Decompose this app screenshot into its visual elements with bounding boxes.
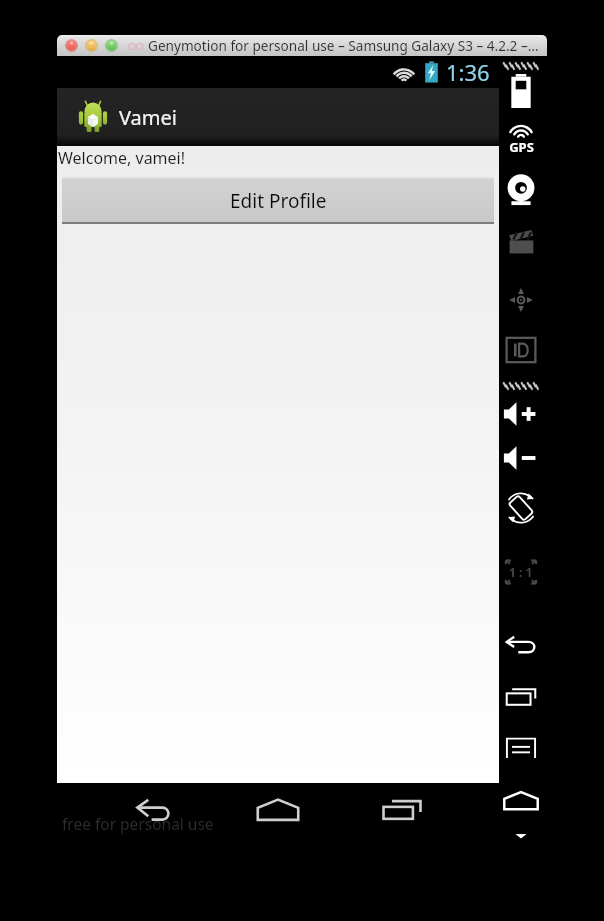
button[interactable]: Home <box>252 784 304 836</box>
button[interactable]: Record video <box>508 229 535 255</box>
staticText: 1:36 <box>446 57 490 87</box>
staticText: Welcome, vamei! <box>58 147 186 169</box>
staticText: Genymotion for personal use – Samsung Ga… <box>148 36 539 55</box>
button[interactable]: Separator <box>503 61 539 71</box>
button[interactable]: Recent apps <box>504 684 538 710</box>
button[interactable]: Rotate <box>505 492 537 524</box>
button[interactable]: Edit Profile <box>62 177 494 224</box>
button[interactable]: Separator <box>503 381 539 391</box>
staticText: free for personal use <box>62 813 214 834</box>
button[interactable]: Window button <box>105 39 118 52</box>
button[interactable]: Menu <box>505 735 537 761</box>
button[interactable]: Window button <box>85 39 98 52</box>
button[interactable]: Battery <box>510 74 532 108</box>
button[interactable]: Identifiers <box>505 334 537 366</box>
button[interactable]: Window button <box>65 39 78 52</box>
button[interactable]: Camera <box>505 175 537 207</box>
button[interactable]: Home <box>502 788 540 814</box>
button[interactable]: Scale 1 to 1 <box>500 554 542 590</box>
staticText: GPS <box>509 138 534 156</box>
staticText: ○○ <box>128 41 144 51</box>
staticText: 1 : 1 <box>509 564 533 580</box>
button[interactable]: Back <box>129 784 181 836</box>
staticText: Vamei <box>119 104 177 131</box>
button[interactable]: Volume up <box>502 400 540 428</box>
button[interactable]: Volume down <box>502 444 540 472</box>
staticText: Edit Profile <box>230 188 327 214</box>
button[interactable]: GPS <box>502 124 540 156</box>
button[interactable]: More <box>513 831 529 841</box>
button[interactable]: Back <box>504 632 538 658</box>
button[interactable]: D-pad <box>504 285 538 315</box>
button[interactable]: Recent apps <box>376 784 428 836</box>
